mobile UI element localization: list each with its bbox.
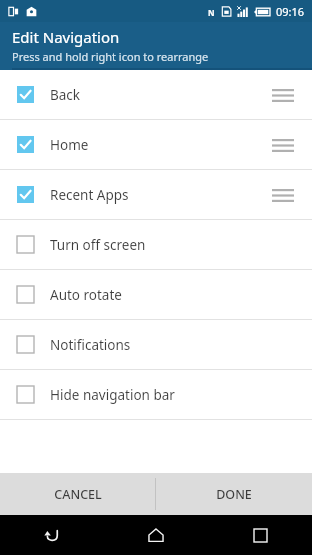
staticText: N [208,7,215,17]
button[interactable]: CANCEL [0,473,155,515]
button[interactable]: Recent Apps [0,170,312,219]
button[interactable]: Reorder Home [268,130,298,160]
button[interactable]: Auto rotate [0,270,312,319]
staticText: Back [50,86,81,104]
staticText: Edit Navigation [12,27,120,47]
staticText: Notifications [50,336,131,354]
button[interactable]: Reorder Recent Apps [268,180,298,210]
button[interactable]: DONE [156,473,312,515]
button[interactable]: Hide navigation bar [0,370,312,419]
staticText: Hide navigation bar [50,386,175,404]
staticText: DONE [216,486,252,503]
staticText: Press and hold right icon to rearrange [12,49,209,64]
staticText: Auto rotate [50,286,122,304]
staticText: CANCEL [54,486,102,503]
button[interactable]: Home [104,515,208,555]
staticText: Turn off screen [50,236,146,254]
button[interactable]: Home [0,120,312,169]
staticText: Recent Apps [50,186,129,204]
button[interactable]: Recent apps [208,515,312,555]
button[interactable]: Reorder Back [268,80,298,110]
staticText: Home [50,136,89,154]
staticText: 09:16 [276,4,305,19]
button[interactable]: Turn off screen [0,220,312,269]
button[interactable]: Back [0,515,104,555]
button[interactable]: Back [0,70,312,119]
button[interactable]: Notifications [0,320,312,369]
